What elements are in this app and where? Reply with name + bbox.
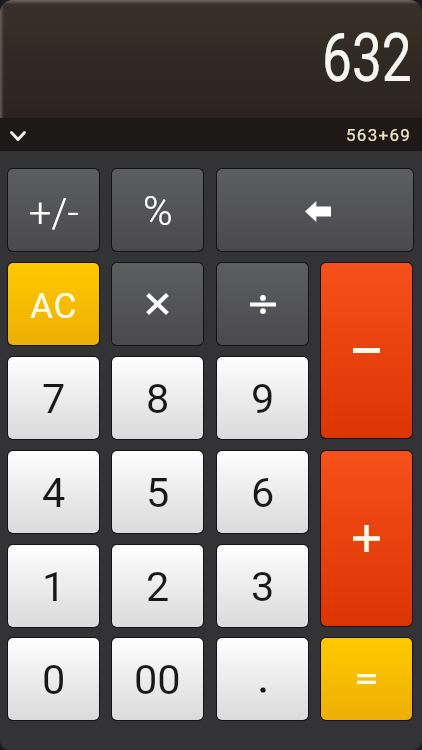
button[interactable]: 6 [217, 451, 308, 533]
button[interactable]: Plus [321, 451, 412, 626]
button[interactable]: Minus [321, 263, 412, 438]
staticText: 8 [146, 374, 170, 423]
staticText: +/- [29, 190, 79, 237]
button[interactable]: Multiply [112, 263, 203, 345]
staticText: 9 [251, 374, 275, 423]
staticText: 00 [134, 655, 181, 704]
button[interactable]: Percent [112, 169, 203, 251]
staticText: 0 [42, 655, 66, 704]
button[interactable]: Decimal point [217, 638, 308, 720]
staticText: 2 [146, 562, 170, 611]
button[interactable]: 2 [112, 545, 203, 627]
staticText: AC [30, 285, 78, 326]
button[interactable]: Plus minus [8, 169, 99, 251]
button[interactable]: Double zero [112, 638, 203, 720]
other: Show history [10, 131, 26, 141]
staticText: % [143, 188, 173, 235]
staticText: 1 [42, 562, 66, 611]
staticText: 5 [146, 468, 170, 517]
button[interactable]: 563+69 [0, 118, 422, 151]
button[interactable]: 3 [217, 545, 308, 627]
button[interactable]: Divide [217, 263, 308, 345]
button[interactable]: 9 [217, 357, 308, 439]
button[interactable]: All clear [8, 263, 99, 345]
staticText: 7 [42, 374, 66, 423]
button[interactable]: 7 [8, 357, 99, 439]
button[interactable]: Equals [321, 638, 412, 720]
staticText: 3 [251, 562, 275, 611]
staticText: 4 [42, 468, 66, 517]
button[interactable]: Backspace [217, 169, 413, 251]
button[interactable]: 5 [112, 451, 203, 533]
button[interactable]: 8 [112, 357, 203, 439]
staticText: 563+69 [346, 125, 412, 145]
button[interactable]: 1 [8, 545, 99, 627]
button[interactable]: 0 [8, 638, 99, 720]
staticText: 6 [251, 468, 275, 517]
button[interactable]: 4 [8, 451, 99, 533]
